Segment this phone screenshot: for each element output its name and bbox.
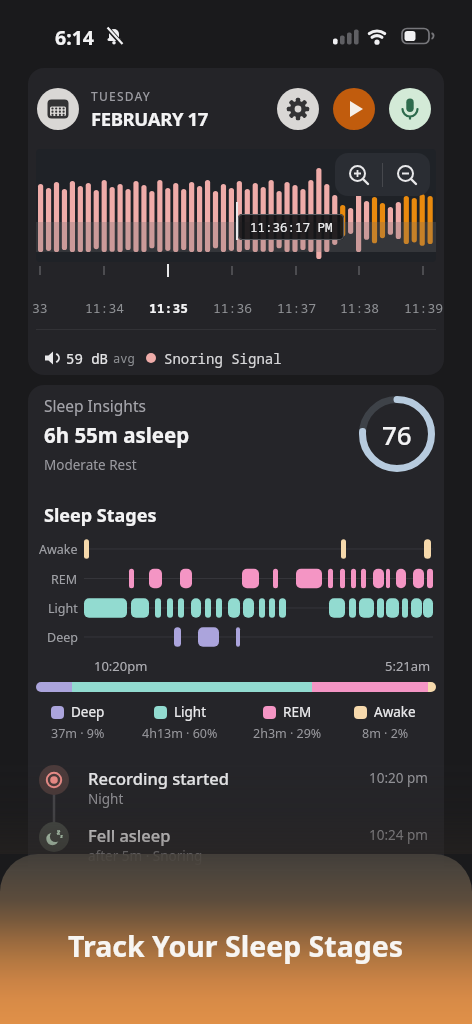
staticText: after 5m · Snoring (88, 847, 203, 865)
staticText: 5:21am (385, 657, 431, 675)
staticText: Night (88, 790, 124, 808)
staticText: TUESDAY (91, 88, 151, 104)
staticText: 11:36:17 PM (250, 219, 333, 236)
staticText: Awake (39, 541, 78, 558)
staticText: Snoring Signal (164, 349, 282, 368)
button[interactable] (333, 88, 375, 130)
staticText: Deep (71, 703, 105, 721)
staticText: avg (113, 350, 135, 366)
staticText: 6:14 (55, 24, 94, 51)
staticText: Light (174, 703, 207, 721)
staticText: 10:20pm (94, 657, 148, 675)
staticText: 4h13m · 60% (142, 725, 218, 742)
staticText: 11:38 (340, 299, 380, 317)
staticText: Sleep Insights (44, 395, 146, 416)
staticText: Moderate Rest (44, 456, 137, 474)
staticText: 11:37 (277, 299, 317, 317)
staticText: REM (283, 703, 312, 721)
button[interactable] (37, 88, 79, 130)
staticText: Light (48, 600, 78, 617)
button[interactable] (383, 153, 430, 196)
staticText: 59 dB (66, 349, 108, 368)
staticText: FEBRUARY 17 (91, 106, 208, 130)
staticText: Deep (47, 629, 78, 646)
staticText: 6h 55m asleep (44, 421, 190, 449)
button[interactable]: Track Your Sleep Stages (0, 854, 472, 1024)
staticText: Fell asleep (88, 824, 171, 846)
staticText: 11:34 (85, 299, 125, 317)
staticText: 76 (382, 417, 412, 452)
staticText: 11:36 (213, 299, 253, 317)
staticText: 11:35 (149, 299, 189, 317)
button[interactable] (39, 822, 69, 852)
staticText: 10:20 pm (369, 769, 428, 787)
staticText: Track Your Sleep Stages (68, 927, 404, 966)
staticText: 11:39 (404, 299, 444, 317)
staticText: 10:24 pm (369, 826, 428, 844)
staticText: 2h3m · 29% (253, 725, 322, 742)
button[interactable] (389, 88, 431, 130)
staticText: 33 (32, 299, 48, 317)
staticText: REM (51, 571, 78, 588)
staticText: Sleep Stages (44, 503, 157, 528)
staticText: 37m · 9% (51, 725, 105, 742)
staticText: Recording started (88, 767, 230, 789)
staticText: Awake (374, 703, 416, 721)
button[interactable] (335, 153, 382, 196)
staticText: 8m · 2% (362, 725, 409, 742)
button[interactable] (277, 88, 319, 130)
button[interactable] (39, 765, 69, 795)
